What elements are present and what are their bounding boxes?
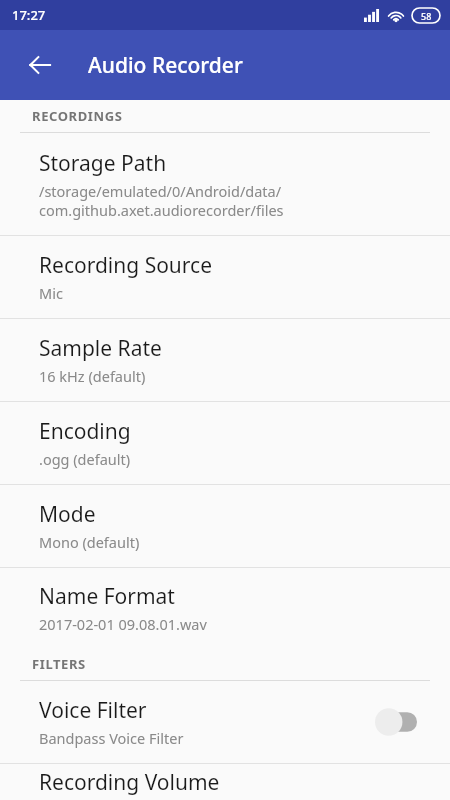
staticText: 16 kHz (default) [39, 366, 146, 386]
button[interactable]: Encoding [0, 402, 450, 484]
staticText: Recording Source [39, 251, 213, 280]
button[interactable]: Storage Path [0, 133, 450, 235]
staticText: Storage Path [39, 149, 167, 178]
button[interactable]: Name Format [0, 568, 450, 648]
staticText: Recording Volume [39, 768, 220, 797]
staticText: FILTERS [32, 655, 86, 673]
button[interactable]: Recording Volume [0, 764, 450, 800]
staticText: .ogg (default) [39, 449, 131, 469]
button[interactable]: Back [16, 41, 64, 89]
staticText: Mono (default) [39, 532, 140, 552]
staticText: Voice Filter [39, 696, 147, 725]
staticText: Bandpass Voice Filter [39, 728, 184, 748]
staticText: /storage/emulated/0/Android/data/ com.gi… [39, 181, 284, 220]
staticText: Mode [39, 500, 96, 529]
staticText: 17:27 [12, 6, 46, 24]
staticText: 2017-02-01 09.08.01.wav [39, 614, 207, 634]
staticText: Encoding [39, 417, 131, 446]
button[interactable]: Voice Filter [0, 681, 450, 763]
staticText: 58 [421, 10, 432, 22]
staticText: RECORDINGS [32, 107, 123, 125]
button[interactable]: Mode [0, 485, 450, 567]
staticText: Name Format [39, 582, 175, 611]
button[interactable]: Voice Filter toggle [372, 705, 420, 739]
staticText: Sample Rate [39, 334, 162, 363]
button[interactable]: Recording Source [0, 236, 450, 318]
staticText: Audio Recorder [88, 51, 243, 80]
button[interactable]: Sample Rate [0, 319, 450, 401]
staticText: Mic [39, 283, 63, 303]
